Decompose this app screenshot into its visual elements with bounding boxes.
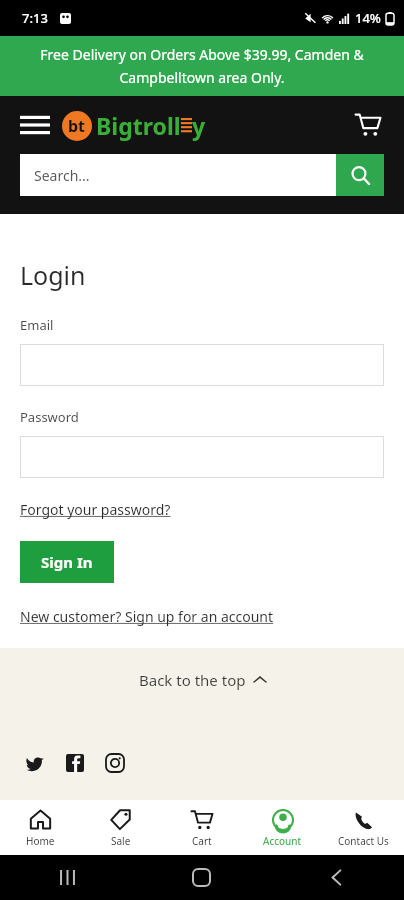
button[interactable]: Cart bbox=[350, 107, 386, 143]
button[interactable]: bt bbox=[62, 110, 206, 141]
button[interactable]: Facebook bbox=[64, 752, 86, 774]
staticText: Account bbox=[263, 834, 302, 848]
button[interactable]: Search... bbox=[20, 154, 336, 196]
staticText: Sign In bbox=[41, 552, 93, 572]
staticText: Password bbox=[20, 408, 79, 426]
staticText: Bigtroll bbox=[96, 110, 181, 141]
staticText: Back to the top bbox=[139, 670, 246, 690]
button[interactable]: Cart bbox=[161, 800, 242, 855]
staticText: y bbox=[192, 110, 206, 141]
staticText: 7:13 bbox=[22, 9, 48, 27]
button[interactable]: Forgot your password? bbox=[20, 500, 171, 519]
staticText: Home bbox=[26, 834, 55, 848]
staticText: Login bbox=[20, 258, 86, 292]
button[interactable] bbox=[20, 436, 384, 478]
staticText: Free Delivery on Orders Above $39.99, Ca… bbox=[40, 45, 364, 87]
button[interactable]: Instagram bbox=[104, 752, 126, 774]
button[interactable]: Twitter bbox=[24, 752, 46, 774]
button[interactable]: Sign In bbox=[20, 541, 114, 583]
button[interactable]: Account bbox=[242, 800, 323, 855]
button[interactable]: Contact Us bbox=[323, 800, 404, 855]
staticText: Cart bbox=[192, 834, 212, 848]
staticText: Email bbox=[20, 316, 54, 334]
button[interactable]: New customer? Sign up for an account bbox=[20, 607, 274, 626]
button[interactable]: Sale bbox=[80, 800, 161, 855]
staticText: bt bbox=[68, 115, 86, 137]
staticText: Sale bbox=[111, 834, 131, 848]
button[interactable]: Menu bbox=[18, 108, 52, 142]
staticText: Contact Us bbox=[338, 834, 389, 848]
staticText: Forgot your password? bbox=[20, 500, 171, 519]
staticText: 14% bbox=[355, 9, 381, 27]
staticText: Search... bbox=[34, 166, 90, 185]
button[interactable]: Home bbox=[0, 800, 80, 855]
button[interactable]: Search bbox=[336, 154, 384, 196]
staticText: New customer? Sign up for an account bbox=[20, 607, 274, 626]
button[interactable]: Back to the top bbox=[0, 648, 404, 712]
button[interactable] bbox=[20, 344, 384, 386]
